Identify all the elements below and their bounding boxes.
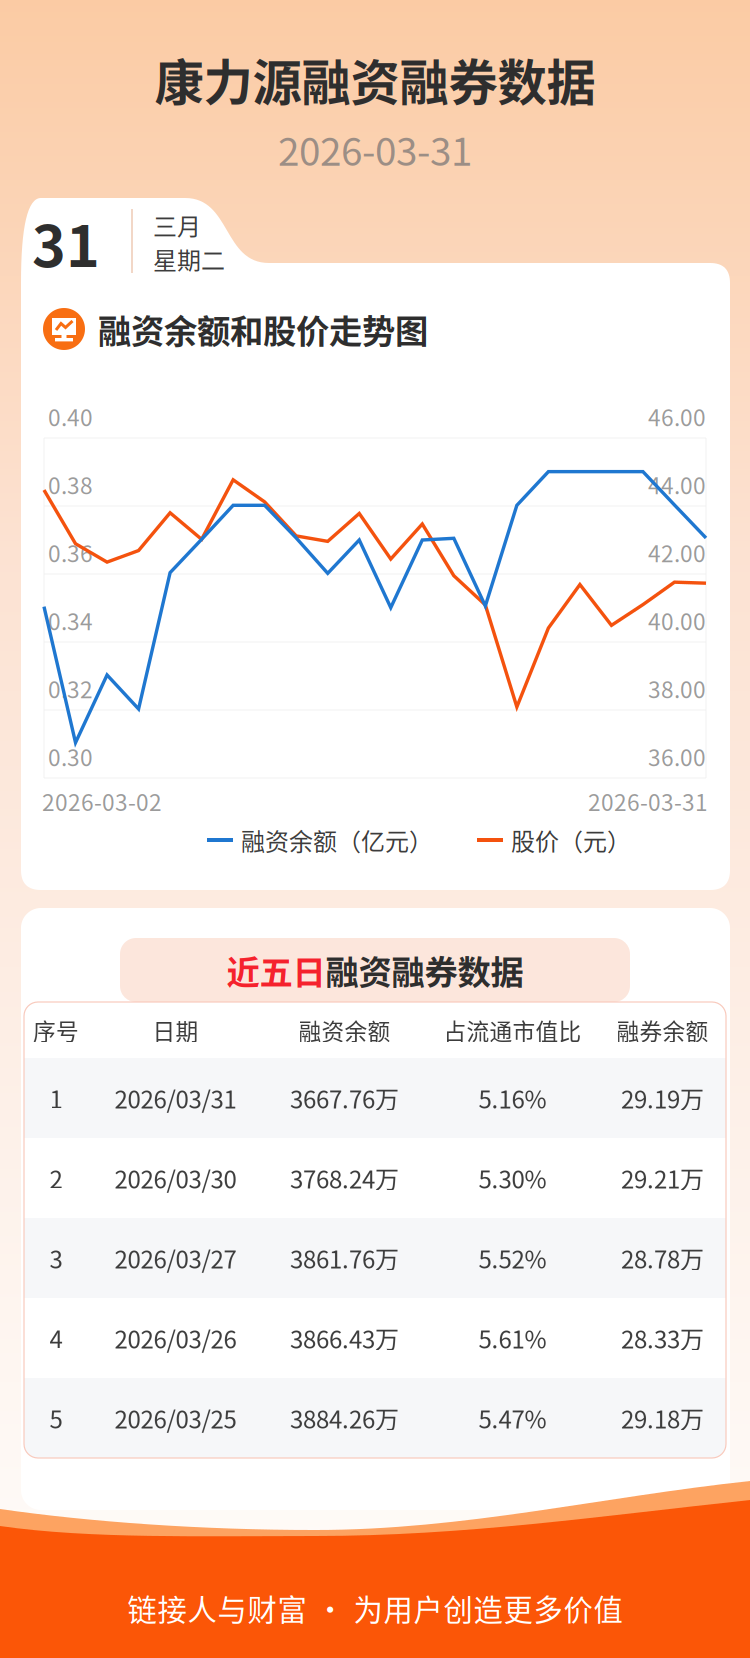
staticText: 0.32 <box>48 672 93 705</box>
staticText: 融资余额（亿元） <box>241 823 433 857</box>
staticText: 融资余额和股价走势图 <box>98 305 428 353</box>
staticText: 2026-03-31 <box>588 785 708 817</box>
staticText: 2026/03/25 <box>114 1401 236 1435</box>
staticText: 5.52% <box>478 1241 546 1275</box>
staticText: 5.16% <box>478 1081 546 1115</box>
staticText: 日期 <box>152 1014 198 1046</box>
staticText: 3866.43万 <box>290 1321 399 1355</box>
staticText: 0.40 <box>48 400 93 433</box>
staticText: 0.34 <box>48 604 93 637</box>
staticText: 3861.76万 <box>290 1241 399 1275</box>
staticText: 0.38 <box>48 468 93 501</box>
staticText: 2026-03-31 <box>278 121 472 177</box>
staticText: 5.47% <box>478 1401 546 1435</box>
staticText: 序号 <box>33 1014 79 1046</box>
staticText: 28.33万 <box>621 1321 704 1355</box>
staticText: 0.30 <box>48 740 93 773</box>
staticText: 46.00 <box>648 400 706 433</box>
staticText: 占流通市值比 <box>443 1014 581 1046</box>
staticText: 5 <box>49 1401 62 1435</box>
staticText: 44.00 <box>648 468 706 501</box>
staticText: 3667.76万 <box>290 1081 399 1115</box>
staticText: 星期二 <box>153 242 225 276</box>
staticText: 2026-03-02 <box>42 785 162 817</box>
staticText: 2026/03/30 <box>114 1161 236 1195</box>
staticText: 29.21万 <box>621 1161 704 1195</box>
staticText: 链接人与财富 · 为用户创造更多价值 <box>127 1587 622 1629</box>
staticText: 29.18万 <box>621 1401 704 1435</box>
staticText: 38.00 <box>648 672 706 705</box>
staticText: 三月 <box>153 208 201 242</box>
staticText: 近五日 <box>226 946 325 994</box>
staticText: 2 <box>49 1161 62 1195</box>
staticText: 42.00 <box>648 536 706 569</box>
staticText: 31 <box>32 200 100 283</box>
staticText: 40.00 <box>648 604 706 637</box>
staticText: 3 <box>49 1241 62 1275</box>
staticText: 4 <box>49 1321 62 1355</box>
staticText: 融资融券数据 <box>325 946 523 994</box>
staticText: 股价（元） <box>511 823 631 857</box>
staticText: 1 <box>49 1081 62 1115</box>
staticText: 5.61% <box>478 1321 546 1355</box>
staticText: 2026/03/26 <box>114 1321 236 1355</box>
staticText: 0.36 <box>48 536 93 569</box>
staticText: 36.00 <box>648 740 706 773</box>
staticText: 5.30% <box>478 1161 546 1195</box>
staticText: 2026/03/31 <box>114 1081 236 1115</box>
staticText: 3768.24万 <box>290 1161 399 1195</box>
staticText: 融资余额 <box>298 1014 390 1046</box>
staticText: 康力源融资融券数据 <box>154 43 595 115</box>
staticText: 融券余额 <box>616 1014 708 1046</box>
staticText: 28.78万 <box>621 1241 704 1275</box>
staticText: 29.19万 <box>621 1081 704 1115</box>
staticText: 2026/03/27 <box>114 1241 236 1275</box>
staticText: 3884.26万 <box>290 1401 399 1435</box>
